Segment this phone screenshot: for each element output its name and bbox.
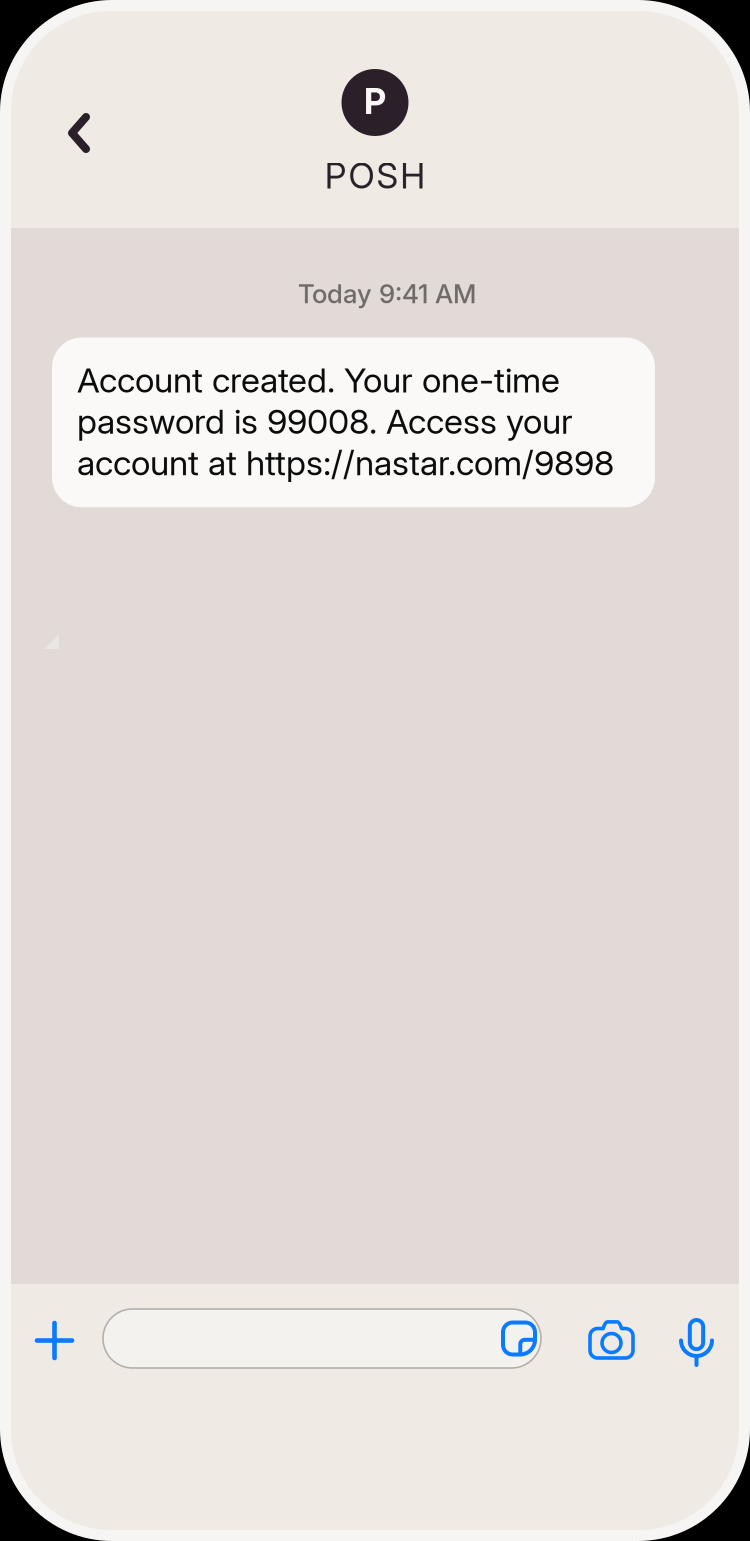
staticText: Today 9:41 AM: [298, 278, 476, 309]
button[interactable]: Camera: [574, 1302, 649, 1376]
button[interactable]: Audio message: [663, 1306, 730, 1379]
staticText: Account created. Your one-time password …: [77, 359, 614, 483]
staticText: POSH: [325, 155, 425, 197]
staticText: P: [364, 80, 386, 122]
button[interactable]: Back: [11, 93, 114, 173]
button[interactable]: POSH contact: [341, 69, 408, 136]
button[interactable]: Add attachment: [18, 1304, 91, 1377]
button[interactable]: Stickers: [493, 1310, 541, 1366]
